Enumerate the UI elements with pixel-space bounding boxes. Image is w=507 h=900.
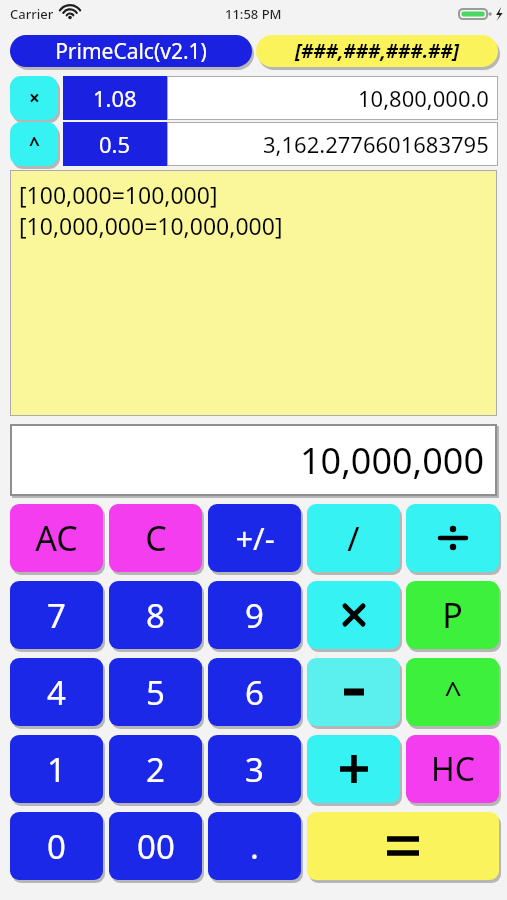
button[interactable]: . bbox=[208, 812, 301, 880]
button[interactable]: 1.08 bbox=[63, 76, 167, 120]
button[interactable]: minus bbox=[307, 658, 400, 726]
staticText: 5 bbox=[146, 670, 165, 715]
button[interactable]: 00 bbox=[109, 812, 202, 880]
staticText: 3 bbox=[245, 747, 264, 792]
button[interactable]: 10,000,000 bbox=[12, 426, 495, 494]
staticText: [100,000=100,000] bbox=[19, 179, 218, 210]
button[interactable]: 0 bbox=[10, 812, 103, 880]
staticText: 7 bbox=[47, 593, 66, 638]
button[interactable]: +/- bbox=[208, 504, 301, 572]
button[interactable]: PrimeCalc(v2.1) bbox=[10, 35, 252, 67]
button[interactable]: 10,800,000.0 bbox=[168, 77, 497, 119]
staticText: HC bbox=[431, 747, 475, 791]
staticText: 1.08 bbox=[93, 83, 137, 113]
staticText: PrimeCalc(v2.1) bbox=[55, 37, 207, 66]
staticText: 00 bbox=[137, 824, 175, 869]
button[interactable]: 3 bbox=[208, 735, 301, 803]
staticText: Carrier bbox=[10, 5, 54, 23]
button[interactable]: 3,162.2776601683795 bbox=[168, 123, 497, 165]
staticText: . bbox=[250, 824, 259, 869]
button[interactable]: divide bbox=[406, 504, 499, 572]
button[interactable]: 5 bbox=[109, 658, 202, 726]
staticText: 1 bbox=[47, 747, 66, 792]
staticText: P bbox=[442, 592, 463, 638]
button[interactable]: / bbox=[307, 504, 400, 572]
staticText: 3,162.2776601683795 bbox=[263, 129, 489, 159]
staticText: 6 bbox=[245, 670, 264, 715]
staticText: 0 bbox=[47, 824, 66, 869]
staticText: / bbox=[347, 516, 360, 561]
staticText: 2 bbox=[146, 747, 165, 792]
staticText: [10,000,000=10,000,000] bbox=[19, 210, 283, 241]
button[interactable]: 9 bbox=[208, 581, 301, 649]
button[interactable]: ^ bbox=[406, 658, 499, 726]
button[interactable]: [100,000=100,000] bbox=[11, 171, 496, 415]
button[interactable]: HC bbox=[406, 735, 499, 803]
button[interactable]: 4 bbox=[10, 658, 103, 726]
staticText: AC bbox=[35, 515, 78, 561]
button[interactable]: P bbox=[406, 581, 499, 649]
button[interactable]: plus bbox=[307, 735, 400, 803]
staticText: 4 bbox=[47, 670, 66, 715]
button[interactable]: equals bbox=[307, 812, 499, 880]
staticText: 10,000,000 bbox=[300, 436, 485, 485]
staticText: ^ bbox=[29, 131, 40, 157]
button[interactable]: 6 bbox=[208, 658, 301, 726]
button[interactable]: times bbox=[307, 581, 400, 649]
staticText: 10,800,000.0 bbox=[358, 83, 489, 113]
button[interactable]: 1 bbox=[10, 735, 103, 803]
button[interactable]: 7 bbox=[10, 581, 103, 649]
staticText: +/- bbox=[235, 517, 275, 559]
staticText: [###,###,###.##] bbox=[295, 38, 459, 64]
button[interactable]: C bbox=[109, 504, 202, 572]
button[interactable]: × bbox=[10, 76, 58, 120]
staticText: 0.5 bbox=[99, 129, 131, 159]
staticText: ^ bbox=[444, 671, 462, 713]
staticText: × bbox=[29, 85, 40, 111]
staticText: C bbox=[145, 515, 167, 561]
button[interactable]: 2 bbox=[109, 735, 202, 803]
button[interactable]: AC bbox=[10, 504, 103, 572]
button[interactable]: 0.5 bbox=[63, 122, 167, 166]
button[interactable]: [###,###,###.##] bbox=[256, 35, 498, 67]
staticText: 8 bbox=[146, 593, 165, 638]
button[interactable]: 8 bbox=[109, 581, 202, 649]
button[interactable]: ^ bbox=[10, 122, 58, 166]
staticText: 9 bbox=[245, 593, 264, 638]
staticText: 11:58 PM bbox=[225, 5, 282, 23]
